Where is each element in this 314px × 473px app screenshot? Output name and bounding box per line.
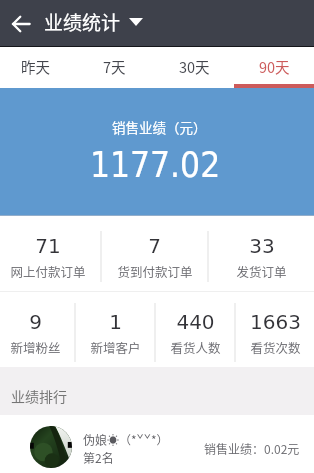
staticText: 新增粉丝	[10, 338, 61, 356]
staticText: 9	[29, 310, 42, 333]
staticText: 1663	[250, 310, 301, 333]
button[interactable]: 90天	[234, 47, 314, 88]
staticText: 昨天	[21, 56, 50, 77]
staticText: 销售业绩：0.02元	[204, 440, 300, 457]
staticText: 伪娘☀（*ˇˇ*）	[83, 431, 169, 448]
button[interactable]: Back	[0, 0, 45, 46]
staticText: 新增客户	[90, 338, 141, 356]
staticText: 7	[148, 234, 161, 257]
button[interactable]: 7天	[75, 47, 154, 88]
staticText: 看货次数	[250, 338, 301, 356]
staticText: 第2名	[83, 449, 114, 466]
staticText: 90天	[259, 56, 290, 77]
staticText: 销售业绩（元）	[112, 117, 207, 137]
staticText: 业绩排行	[11, 386, 67, 406]
button[interactable]: 伪娘☀（*ˇˇ*）	[0, 415, 314, 473]
staticText: 货到付款订单	[117, 262, 193, 280]
staticText: 1	[109, 310, 122, 333]
staticText: 440	[176, 310, 215, 333]
button[interactable]: 业绩统计	[44, 0, 143, 46]
staticText: 业绩统计	[44, 8, 121, 36]
staticText: 看货人数	[170, 338, 221, 356]
staticText: 1177.02	[90, 145, 221, 186]
button[interactable]: 30天	[154, 47, 234, 88]
staticText: 30天	[179, 56, 210, 77]
staticText: 71	[35, 234, 61, 257]
staticText: 网上付款订单	[10, 262, 86, 280]
staticText: 7天	[103, 56, 126, 77]
button[interactable]: 昨天	[0, 47, 75, 88]
staticText: 33	[249, 234, 275, 257]
staticText: 发货订单	[236, 262, 287, 280]
